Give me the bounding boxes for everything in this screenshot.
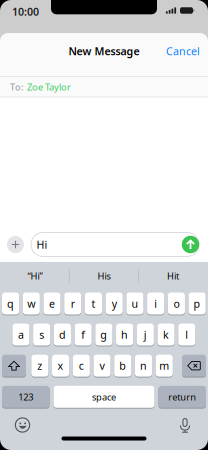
button[interactable]: Hit (140, 266, 206, 286)
staticText: Zoe Taylor (27, 81, 71, 93)
staticText: His (97, 270, 110, 282)
button[interactable]: return (158, 385, 206, 408)
staticText: space (92, 391, 116, 403)
staticText: return (168, 391, 196, 403)
staticText: y (112, 296, 117, 311)
button[interactable]: 123 (2, 385, 49, 408)
staticText: t (91, 296, 95, 311)
button[interactable]: b (114, 354, 131, 377)
button[interactable]: a (12, 323, 29, 346)
staticText: a (18, 327, 24, 342)
staticText: m (159, 359, 169, 373)
staticText: p (194, 296, 201, 311)
staticText: Cancel (166, 44, 200, 58)
button[interactable]: i (147, 292, 164, 315)
staticText: h (121, 327, 128, 342)
staticText: v (99, 359, 104, 373)
button[interactable]: g (95, 323, 112, 346)
staticText: Hit (167, 270, 179, 282)
staticText: z (37, 359, 42, 373)
staticText: o (173, 296, 179, 311)
staticText: New Message (68, 44, 139, 58)
staticText: r (71, 296, 75, 311)
staticText: b (119, 359, 126, 373)
staticText: c (79, 359, 84, 373)
staticText: i (154, 296, 157, 311)
button[interactable]: Emoji (15, 417, 30, 432)
button[interactable]: Cancel (166, 44, 200, 58)
button[interactable]: q (2, 292, 19, 315)
staticText: q (7, 296, 14, 311)
staticText: k (163, 327, 169, 342)
button[interactable]: f (75, 323, 92, 346)
button[interactable]: Attach (7, 236, 24, 253)
button[interactable]: His (71, 266, 137, 286)
button[interactable]: h (116, 323, 133, 346)
staticText: To: (10, 81, 24, 93)
button[interactable]: To: (0, 77, 208, 97)
button[interactable]: x (52, 354, 69, 377)
button[interactable]: t (85, 292, 102, 315)
staticText: w (27, 296, 35, 311)
button[interactable]: k (157, 323, 175, 346)
staticText: “Hi” (27, 270, 42, 282)
staticText: d (59, 327, 66, 342)
button[interactable]: m (156, 354, 173, 377)
staticText: e (49, 296, 55, 311)
button[interactable]: Dictation (178, 418, 191, 433)
button[interactable]: r (64, 292, 81, 315)
button[interactable]: w (23, 292, 40, 315)
button[interactable]: u (126, 292, 143, 315)
button[interactable]: s (33, 323, 50, 346)
staticText: u (131, 296, 138, 311)
button[interactable]: o (168, 292, 185, 315)
staticText: s (39, 327, 44, 342)
button[interactable]: j (137, 323, 154, 346)
button[interactable]: l (178, 323, 195, 346)
staticText: 10:00 (12, 4, 39, 19)
staticText: n (140, 359, 147, 373)
staticText: l (185, 327, 188, 342)
button[interactable]: space (53, 385, 154, 408)
button[interactable]: Shift (2, 354, 26, 377)
button[interactable]: p (189, 292, 206, 315)
button[interactable]: v (93, 354, 111, 377)
button[interactable]: n (135, 354, 152, 377)
staticText: Hi (36, 237, 47, 252)
button[interactable]: z (31, 354, 48, 377)
button[interactable]: c (73, 354, 90, 377)
button[interactable]: Send (182, 236, 199, 253)
staticText: g (100, 327, 107, 342)
staticText: f (81, 327, 85, 342)
staticText: j (144, 327, 147, 342)
button[interactable]: Delete (182, 354, 206, 377)
staticText: 123 (18, 391, 33, 403)
button[interactable]: y (106, 292, 123, 315)
button[interactable]: “Hi” (2, 266, 68, 286)
staticText: x (58, 359, 64, 373)
button[interactable]: e (43, 292, 61, 315)
button[interactable]: d (54, 323, 71, 346)
